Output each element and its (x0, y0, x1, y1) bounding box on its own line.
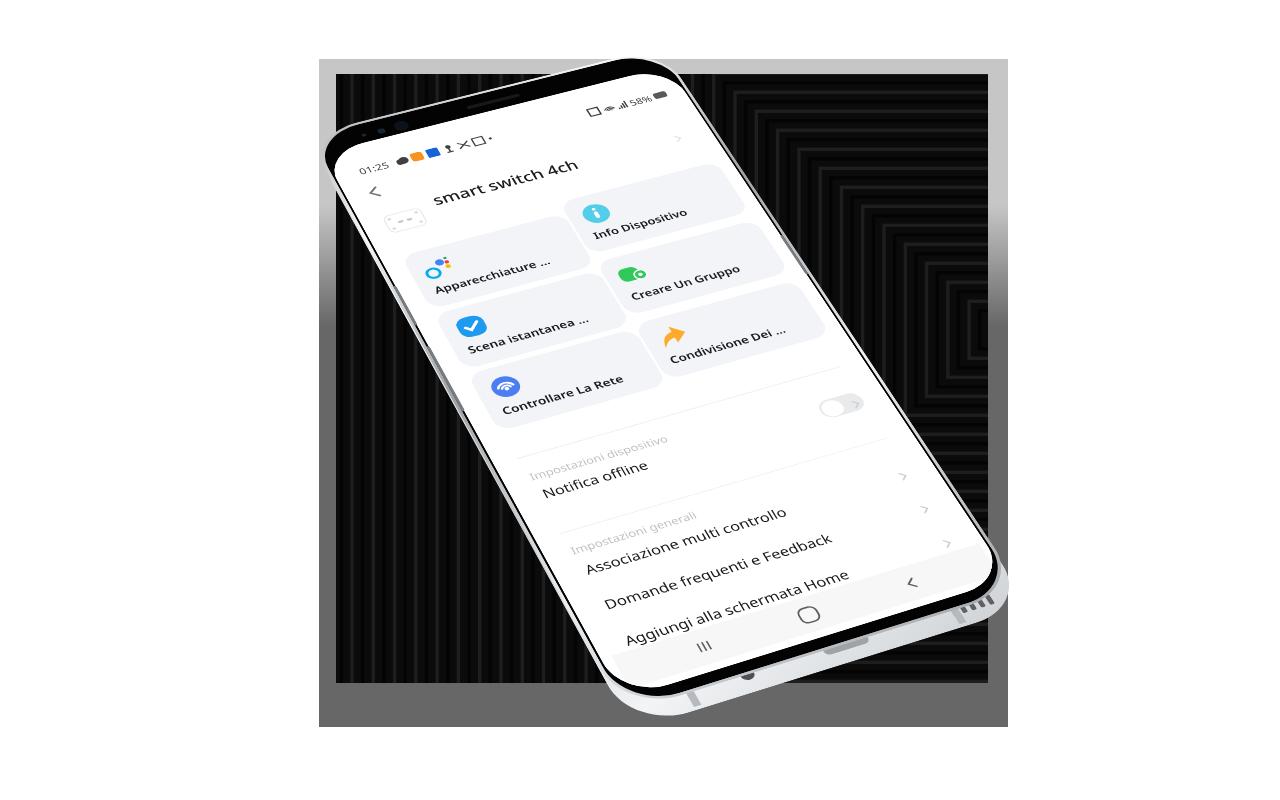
button[interactable]: Back (353, 178, 395, 206)
staticText: Associazione multi controllo (581, 503, 791, 578)
button[interactable]: Aggiungi alla schermata Home (599, 523, 979, 660)
button[interactable]: Info Dispositivo (559, 161, 750, 254)
button[interactable]: Creare Un Gruppo (596, 220, 790, 316)
staticText: Condivisione Dei ... (666, 322, 789, 367)
staticText: 01:25 (356, 159, 391, 176)
staticText: Info Dispositivo (590, 206, 691, 242)
button[interactable]: Recents (672, 623, 736, 670)
staticText: 58% (627, 93, 654, 107)
button[interactable]: Notifica offline (518, 386, 887, 511)
button[interactable]: Scena istantanea ... (433, 270, 631, 370)
button[interactable]: Home (776, 592, 840, 637)
button[interactable]: Domande frequenti e Feedback (579, 489, 957, 623)
staticText: Apparecchiature ... (431, 254, 553, 297)
staticText: Impostazioni dispositivo (526, 432, 670, 483)
button[interactable]: Back (879, 561, 943, 605)
button[interactable]: Associazione multi controllo (560, 457, 935, 588)
staticText: Controllare La Rete (499, 371, 627, 418)
staticText: Scena istantanea ... (465, 312, 592, 357)
button[interactable]: Condivisione Dei ... (633, 280, 831, 380)
staticText: Impostazioni generali (568, 508, 700, 557)
staticText: Aggiungi alla schermata Home (621, 565, 853, 649)
button[interactable]: Apparecchiature ... (401, 213, 595, 310)
button[interactable] (815, 391, 868, 420)
staticText: smart switch 4ch (429, 156, 582, 209)
staticText: Creare Un Gruppo (628, 262, 744, 303)
button[interactable]: Controllare La Rete (467, 328, 668, 432)
staticText: Notifica offline (539, 456, 652, 502)
button[interactable]: More (660, 127, 695, 150)
staticText: Domande frequenti e Feedback (600, 529, 835, 613)
